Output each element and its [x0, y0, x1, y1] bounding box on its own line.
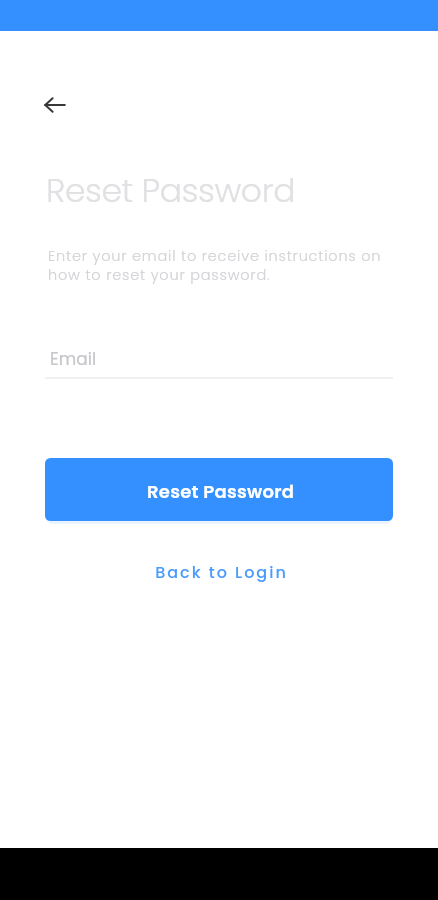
- button[interactable]: Back: [33, 83, 77, 127]
- button[interactable]: Back to Login: [137, 554, 302, 590]
- staticText: Back to Login: [155, 561, 288, 583]
- staticText: Reset Password: [147, 479, 295, 504]
- staticText: Enter your email to receive instructions…: [48, 246, 382, 285]
- staticText: Reset Password: [46, 167, 296, 213]
- button[interactable]: Reset Password: [45, 458, 393, 521]
- staticText: Email: [50, 347, 97, 371]
